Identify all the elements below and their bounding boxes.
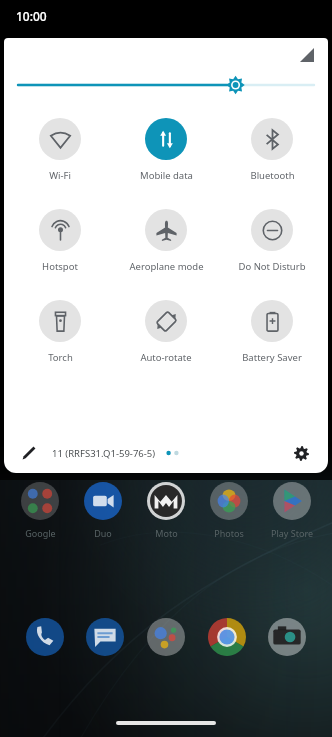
button[interactable]: Moto	[137, 482, 195, 539]
button[interactable]: Duo	[74, 482, 132, 539]
button[interactable]: Auto-rotate	[116, 298, 216, 366]
staticText: Battery Saver	[242, 351, 302, 364]
button[interactable]: Camera	[265, 615, 309, 659]
button[interactable]: Settings	[288, 440, 314, 466]
button[interactable]: Torch	[10, 298, 110, 366]
button[interactable]: Brightness	[4, 72, 328, 98]
staticText: Mobile data	[140, 169, 193, 182]
staticText: Moto	[155, 527, 178, 539]
button[interactable]: Messages	[83, 615, 127, 659]
button[interactable]: Do Not Disturb	[222, 207, 322, 275]
button[interactable]: Home	[116, 721, 216, 725]
staticText: Play Store	[271, 527, 313, 539]
button[interactable]: Edit tiles	[18, 442, 40, 464]
button[interactable]: Bluetooth	[222, 116, 322, 184]
button[interactable]: Aeroplane mode	[116, 207, 216, 275]
staticText: Duo	[94, 527, 112, 539]
staticText: Do Not Disturb	[238, 260, 306, 273]
staticText: Hotspot	[42, 260, 78, 273]
button[interactable]: Assistant	[144, 615, 188, 659]
button[interactable]: Hotspot	[10, 207, 110, 275]
staticText: Google	[25, 527, 56, 539]
staticText: Bluetooth	[250, 169, 295, 182]
button[interactable]: Google	[11, 482, 69, 539]
staticText: 11 (RRFS31.Q1-59-76-5)	[52, 447, 156, 460]
staticText: Wi-Fi	[49, 169, 71, 182]
staticText: Photos	[214, 527, 244, 539]
button[interactable]: Mobile data	[116, 116, 216, 184]
staticText: Aeroplane mode	[129, 260, 204, 273]
button[interactable]: Battery Saver	[222, 298, 322, 366]
button[interactable]: Chrome	[205, 615, 249, 659]
staticText: Torch	[48, 351, 73, 364]
button[interactable]: Photos	[200, 482, 258, 539]
staticText: 10:00	[16, 8, 47, 24]
button[interactable]: Wi-Fi	[10, 116, 110, 184]
button[interactable]: Phone	[23, 615, 67, 659]
button[interactable]: Play Store	[263, 482, 321, 539]
staticText: Auto-rotate	[140, 351, 192, 364]
